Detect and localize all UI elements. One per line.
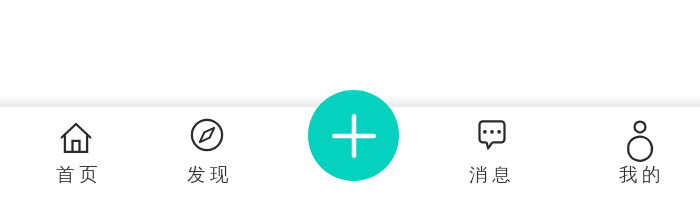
button[interactable]: Add bbox=[308, 90, 399, 181]
staticText: 发现 bbox=[156, 163, 264, 186]
button[interactable]: 发现 bbox=[154, 107, 262, 197]
staticText: 我的 bbox=[588, 163, 696, 186]
staticText: 首页 bbox=[25, 163, 133, 186]
button[interactable]: 消息 bbox=[436, 107, 544, 197]
button[interactable]: 我的 bbox=[586, 107, 694, 197]
button[interactable]: 首页 bbox=[23, 107, 131, 197]
staticText: 消息 bbox=[438, 163, 546, 186]
